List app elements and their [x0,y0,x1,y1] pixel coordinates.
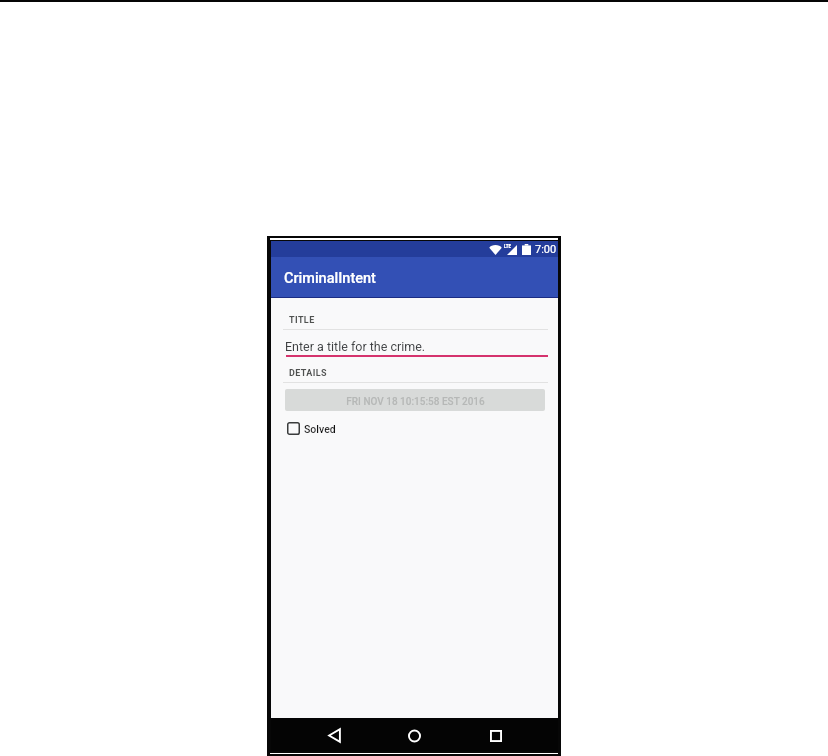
staticText: FRI NOV 18 10:15:58 EST 2016 [346,396,485,408]
button[interactable]: Recent apps [474,718,518,751]
staticText: Solved [304,423,336,435]
staticText: CriminalIntent [284,270,376,287]
staticText: LTE [504,244,512,249]
button[interactable]: FRI NOV 18 10:15:58 EST 2016 [285,389,545,411]
button[interactable]: Home [392,718,436,751]
staticText: 7:00 [535,243,557,256]
staticText: DETAILS [289,368,327,379]
button[interactable]: Back [312,718,356,751]
button[interactable]: Enter a title for the crime. [285,335,549,357]
staticText: TITLE [289,315,315,326]
staticText: Enter a title for the crime. [285,339,426,354]
button[interactable]: Solved [287,422,336,435]
